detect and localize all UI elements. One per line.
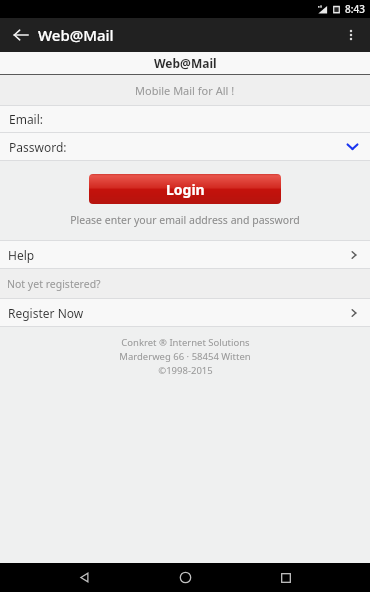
staticText: Password: — [9, 139, 67, 155]
staticText: 8:43 — [345, 2, 365, 16]
staticText: Help — [8, 247, 35, 263]
staticText: Register Now — [8, 305, 84, 321]
button[interactable]: Help — [0, 241, 370, 268]
button[interactable]: Password: — [0, 133, 370, 160]
staticText: Please enter your email address and pass… — [70, 213, 300, 227]
staticText: Not yet registered? — [7, 277, 101, 291]
button[interactable]: More options — [338, 22, 364, 48]
button[interactable]: Login — [89, 174, 281, 204]
staticText: Login — [166, 180, 205, 199]
staticText: Mobile Mail for All ! — [135, 83, 235, 98]
staticText: Conkret ® Internet Solutions — [121, 336, 250, 349]
button[interactable]: Back — [8, 22, 34, 48]
staticText: Marderweg 66 · 58454 Witten — [119, 350, 251, 363]
staticText: Email: — [9, 111, 44, 127]
staticText: ©1998-2015 — [158, 364, 213, 377]
button[interactable]: Register Now — [0, 299, 370, 326]
staticText: Web@Mail — [154, 55, 217, 71]
button[interactable]: Back — [67, 563, 101, 592]
staticText: Web@Mail — [38, 25, 114, 45]
button[interactable]: Home — [168, 563, 202, 592]
button[interactable]: Recent apps — [269, 563, 303, 592]
button[interactable]: Email: — [0, 106, 370, 132]
